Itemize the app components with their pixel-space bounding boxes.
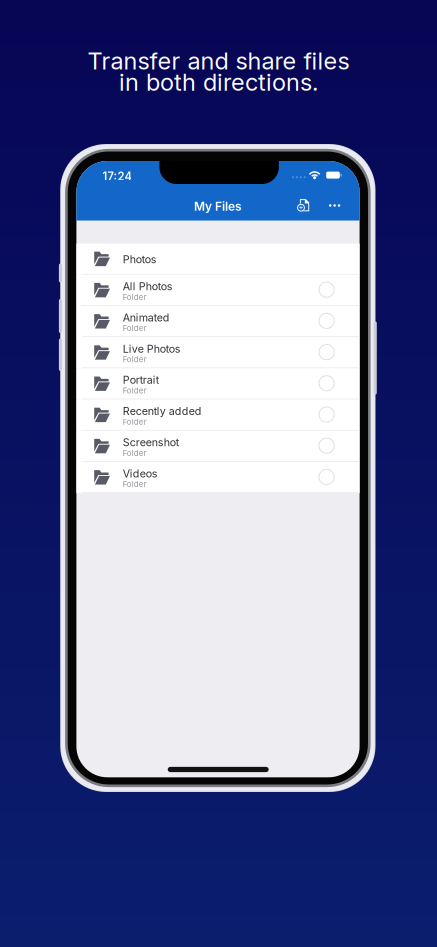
staticText: Screenshot [123, 436, 179, 449]
button[interactable]: Portrait [76, 368, 360, 399]
staticText: Folder [123, 324, 147, 333]
staticText: Portrait [123, 373, 159, 386]
button[interactable]: New file [76, 161, 100, 185]
staticText: Folder [123, 355, 147, 364]
staticText: Live Photos [123, 342, 181, 355]
staticText: Photos [123, 253, 157, 266]
staticText: in both directions. [119, 68, 318, 96]
button[interactable]: Animated [76, 306, 360, 337]
staticText: Folder [123, 292, 147, 302]
button[interactable]: All Photos [76, 275, 360, 306]
staticText: Folder [123, 417, 147, 427]
button[interactable]: Live Photos [76, 337, 360, 368]
staticText: All Photos [123, 280, 173, 293]
button[interactable]: More [76, 161, 98, 183]
staticText: My Files [194, 199, 242, 214]
staticText: Recently added [123, 405, 202, 418]
staticText: Animated [123, 311, 170, 324]
button[interactable]: Photos [76, 243, 360, 275]
staticText: 17:24 [102, 170, 131, 183]
staticText: Videos [123, 467, 158, 480]
button[interactable]: Videos [76, 462, 360, 493]
staticText: Transfer and share files [87, 46, 349, 75]
staticText: Folder [123, 386, 147, 395]
staticText: Folder [123, 448, 147, 458]
staticText: Folder [123, 480, 147, 489]
button[interactable]: Recently added [76, 399, 360, 431]
button[interactable]: Screenshot [76, 431, 360, 462]
